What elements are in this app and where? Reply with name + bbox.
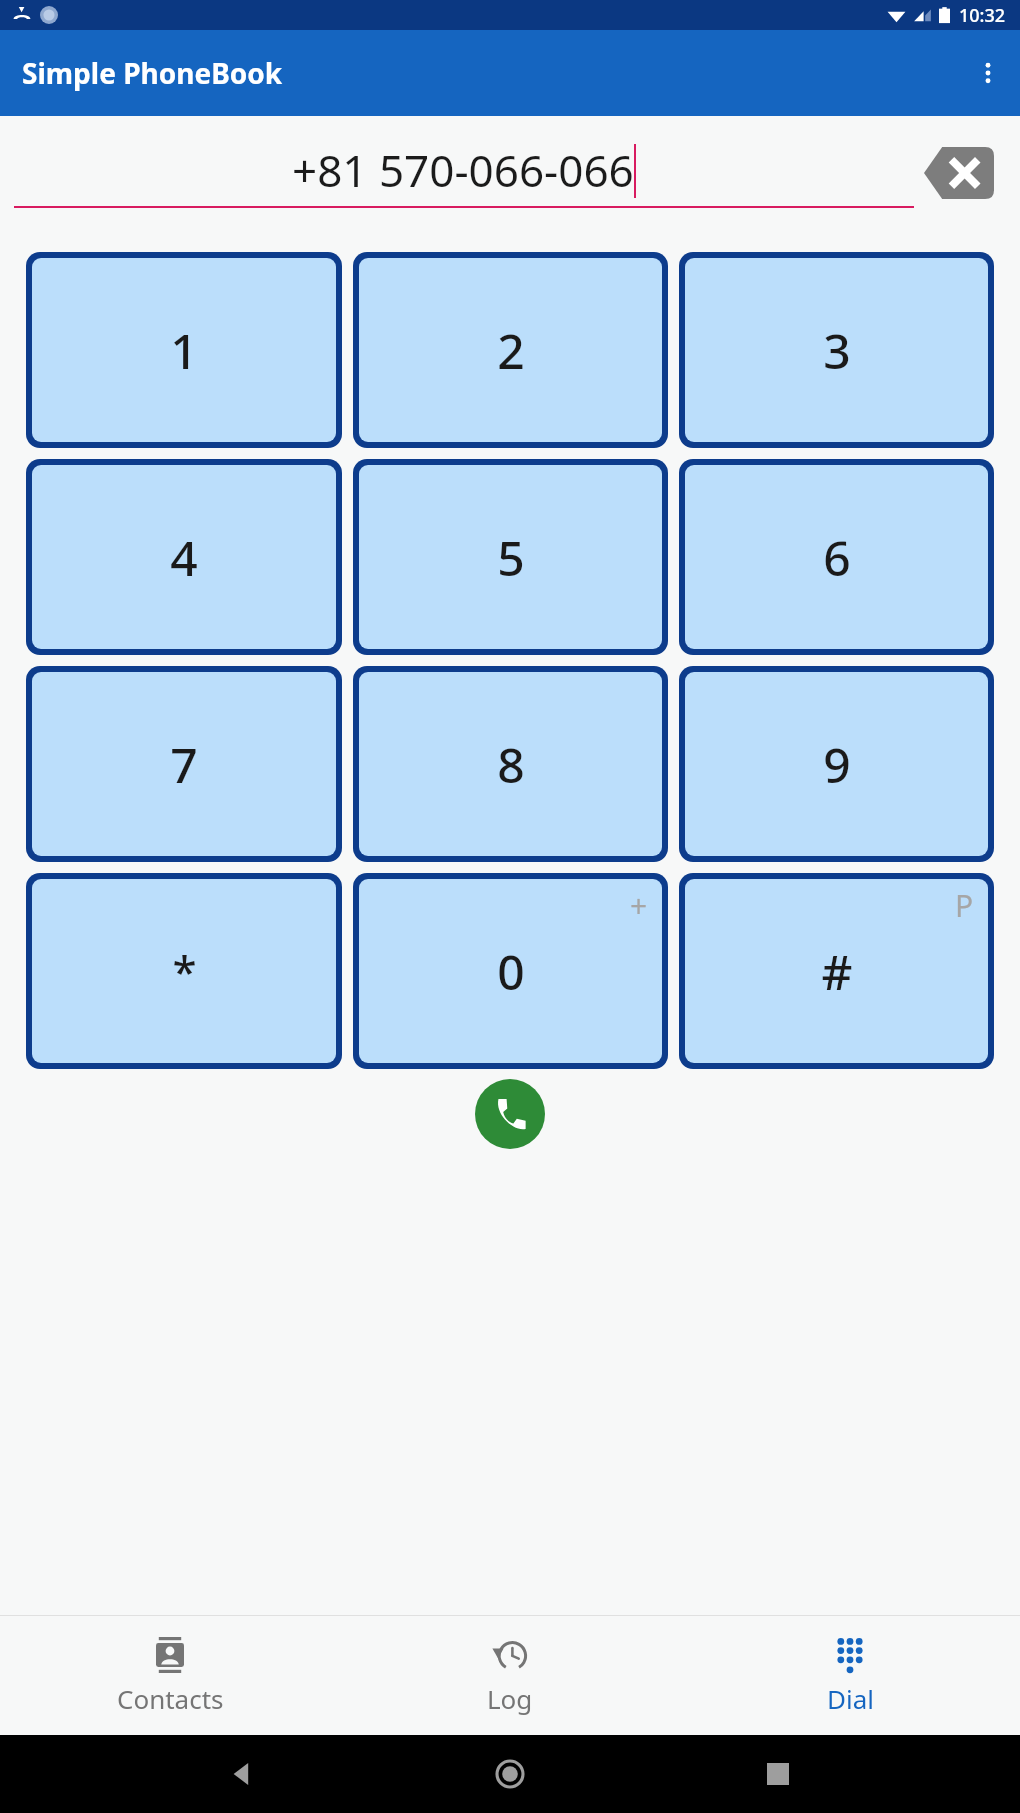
staticText: Contacts bbox=[117, 1681, 224, 1716]
staticText: 9 bbox=[823, 732, 851, 797]
button[interactable]: Recents bbox=[752, 1748, 804, 1800]
button[interactable]: 1 bbox=[32, 258, 336, 442]
button[interactable]: 3 bbox=[685, 258, 988, 442]
button[interactable]: 8 bbox=[359, 672, 662, 856]
staticText: # bbox=[821, 939, 853, 1004]
button[interactable]: 0 bbox=[359, 879, 662, 1063]
staticText: + bbox=[630, 885, 648, 926]
staticText: 5 bbox=[497, 525, 525, 590]
staticText: +81 570-066-066 bbox=[292, 140, 634, 200]
staticText: 2 bbox=[497, 318, 525, 383]
staticText: 4 bbox=[170, 525, 198, 590]
button[interactable]: 2 bbox=[359, 258, 662, 442]
staticText: 8 bbox=[497, 732, 525, 797]
button[interactable]: * bbox=[32, 879, 336, 1063]
staticText: 10:32 bbox=[959, 3, 1006, 28]
button[interactable]: Home bbox=[484, 1748, 536, 1800]
button[interactable]: 4 bbox=[32, 465, 336, 649]
button[interactable]: Call bbox=[475, 1079, 545, 1149]
staticText: * bbox=[172, 941, 197, 1001]
button[interactable]: 7 bbox=[32, 672, 336, 856]
staticText: 0 bbox=[497, 939, 525, 1004]
staticText: P bbox=[955, 885, 974, 926]
staticText: Log bbox=[487, 1681, 533, 1716]
button[interactable]: 5 bbox=[359, 465, 662, 649]
staticText: Simple PhoneBook bbox=[22, 54, 283, 92]
button[interactable]: Log bbox=[340, 1615, 680, 1735]
button[interactable]: # bbox=[685, 879, 988, 1063]
button[interactable]: 9 bbox=[685, 672, 988, 856]
staticText: 1 bbox=[170, 318, 198, 383]
button[interactable]: More options bbox=[964, 49, 1012, 97]
button[interactable]: 6 bbox=[685, 465, 988, 649]
staticText: 3 bbox=[823, 318, 851, 383]
staticText: Dial bbox=[827, 1681, 874, 1716]
button[interactable]: Contacts bbox=[0, 1615, 340, 1735]
button[interactable]: Dial bbox=[680, 1615, 1020, 1735]
staticText: 6 bbox=[823, 525, 851, 590]
staticText: 7 bbox=[170, 732, 198, 797]
button[interactable]: Backspace bbox=[924, 147, 994, 199]
button[interactable]: Back bbox=[216, 1748, 268, 1800]
